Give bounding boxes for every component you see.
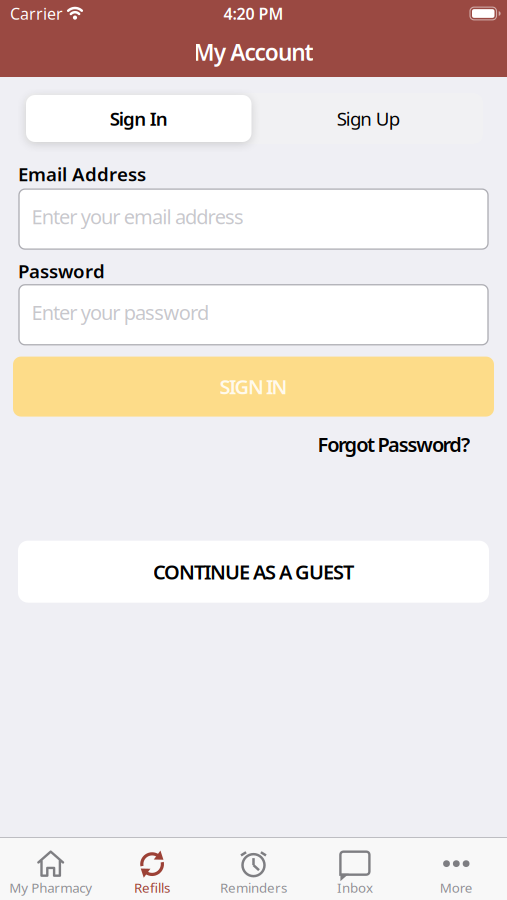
staticText: Sign In — [110, 106, 168, 131]
staticText: Forgot Password? — [317, 431, 470, 458]
button[interactable]: Reminders — [203, 840, 304, 898]
staticText: CONTINUE AS A GUEST — [153, 558, 354, 585]
button[interactable]: Forgot Password? — [317, 431, 470, 458]
button[interactable]: Sign Up — [253, 93, 483, 144]
staticText: Reminders — [220, 879, 287, 896]
staticText: More — [440, 879, 473, 896]
button[interactable]: More — [406, 840, 507, 898]
staticText: Carrier — [10, 3, 63, 24]
staticText: SIGN IN — [219, 373, 287, 400]
staticText: Enter your email address — [31, 203, 244, 230]
staticText: Password — [18, 259, 105, 283]
staticText: Email Address — [18, 161, 146, 186]
button[interactable]: SIGN IN — [13, 357, 494, 417]
staticText: Inbox — [337, 879, 373, 896]
staticText: Sign Up — [337, 106, 400, 131]
staticText: 4:20 PM — [223, 3, 283, 24]
button[interactable]: Inbox — [304, 840, 406, 898]
staticText: My Pharmacy — [9, 879, 92, 896]
button[interactable]: My Pharmacy — [0, 840, 101, 898]
button[interactable]: Sign In — [24, 93, 253, 144]
staticText: My Account — [194, 37, 313, 67]
button[interactable]: CONTINUE AS A GUEST — [18, 541, 489, 603]
button[interactable]: Refills — [101, 840, 203, 898]
staticText: Refills — [134, 879, 170, 896]
staticText: Enter your password — [31, 299, 209, 326]
